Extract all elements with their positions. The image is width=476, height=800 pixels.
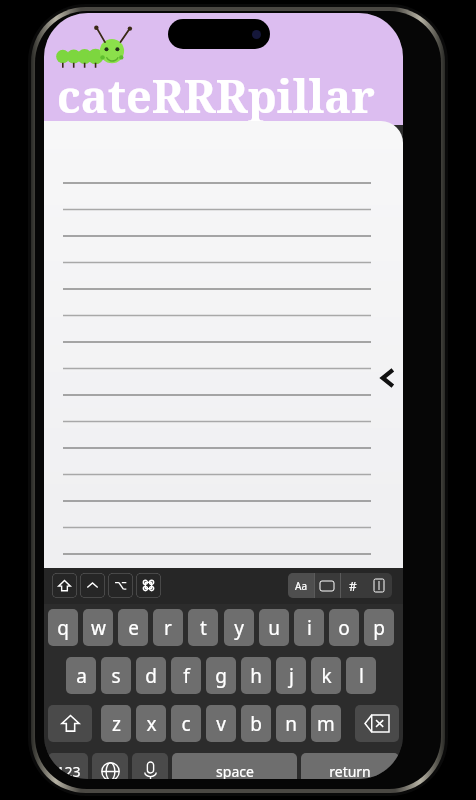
button[interactable]: Aa <box>288 573 314 598</box>
button[interactable]: f <box>171 657 201 694</box>
button[interactable]: q <box>48 609 78 646</box>
button[interactable]: v <box>206 705 236 742</box>
staticText: z <box>112 711 121 737</box>
button[interactable]: ctrl <box>80 573 105 598</box>
button[interactable]: p <box>364 609 394 646</box>
button[interactable]: a <box>66 657 96 694</box>
staticText: a <box>76 663 87 689</box>
staticText: s <box>111 663 121 689</box>
button[interactable]: 123 <box>48 753 88 779</box>
button[interactable]: Dictate <box>132 753 168 779</box>
staticText: i <box>307 615 312 641</box>
button[interactable]: k <box>311 657 341 694</box>
staticText: o <box>338 615 350 641</box>
button[interactable]: z <box>101 705 131 742</box>
button[interactable]: Backspace <box>355 705 399 742</box>
button[interactable]: t <box>188 609 218 646</box>
button[interactable]: u <box>259 609 289 646</box>
button[interactable]: y <box>224 609 254 646</box>
button[interactable]: return <box>301 753 399 779</box>
staticText: p <box>373 615 385 641</box>
button[interactable]: j <box>276 657 306 694</box>
staticText: f <box>183 663 190 689</box>
button[interactable] <box>44 121 403 568</box>
staticText: t <box>200 615 207 641</box>
button[interactable]: shift <box>52 573 77 598</box>
button[interactable]: fmt3 <box>366 573 392 598</box>
staticText: r <box>164 615 172 641</box>
staticText: y <box>234 615 244 641</box>
staticText: q <box>57 615 69 641</box>
button[interactable]: Back <box>371 361 403 395</box>
staticText: k <box>321 663 332 689</box>
button[interactable]: Shift <box>48 705 92 742</box>
staticText: g <box>215 663 227 689</box>
staticText: e <box>128 615 139 641</box>
staticText: u <box>268 615 280 641</box>
staticText: d <box>145 663 157 689</box>
button[interactable]: n <box>276 705 306 742</box>
button[interactable]: e <box>118 609 148 646</box>
button[interactable]: s <box>101 657 131 694</box>
button[interactable]: m <box>311 705 341 742</box>
button[interactable]: g <box>206 657 236 694</box>
staticText: h <box>250 663 262 689</box>
button[interactable]: c <box>171 705 201 742</box>
staticText: l <box>359 663 364 689</box>
staticText: b <box>250 711 262 737</box>
staticText: w <box>91 615 106 641</box>
staticText: j <box>289 663 294 689</box>
staticText: x <box>146 711 157 737</box>
button[interactable]: space <box>172 753 297 779</box>
button[interactable]: w <box>83 609 113 646</box>
button[interactable]: x <box>136 705 166 742</box>
button[interactable]: h <box>241 657 271 694</box>
staticText: 123 <box>56 762 81 779</box>
button[interactable]: cmd <box>136 573 161 598</box>
staticText: m <box>317 711 335 737</box>
staticText: cateRRRpillar <box>57 65 375 126</box>
button[interactable]: fmt2 <box>340 573 366 598</box>
staticText: return <box>329 762 371 779</box>
staticText: Aa <box>295 579 307 593</box>
button[interactable]: r <box>153 609 183 646</box>
button[interactable]: o <box>329 609 359 646</box>
button[interactable]: l <box>346 657 376 694</box>
button[interactable]: i <box>294 609 324 646</box>
staticText: v <box>216 711 226 737</box>
staticText: n <box>285 711 297 737</box>
button[interactable]: fmt1 <box>314 573 340 598</box>
button[interactable]: b <box>241 705 271 742</box>
button[interactable]: opt <box>108 573 133 598</box>
staticText: space <box>216 762 254 779</box>
button[interactable]: d <box>136 657 166 694</box>
button[interactable]: Language <box>92 753 128 779</box>
staticText: # <box>349 578 357 594</box>
staticText: c <box>181 711 191 737</box>
